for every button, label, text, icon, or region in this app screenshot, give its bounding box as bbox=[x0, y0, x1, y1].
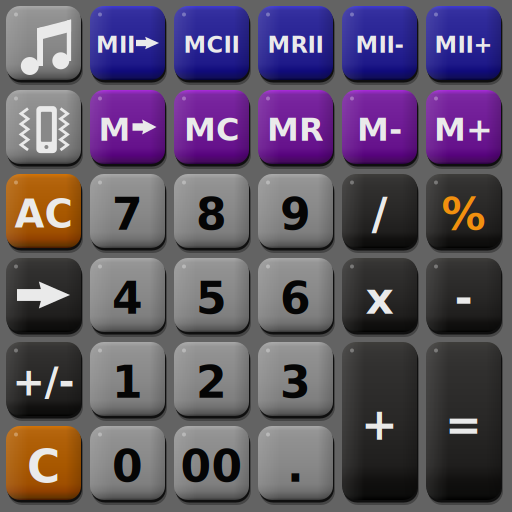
button[interactable]: Clear memory two bbox=[174, 6, 249, 80]
staticText: 4 bbox=[112, 273, 143, 324]
staticText: / bbox=[371, 189, 387, 240]
button[interactable]: Divide bbox=[342, 174, 417, 248]
button[interactable]: Minus bbox=[426, 258, 501, 332]
button[interactable]: Clear bbox=[6, 426, 81, 500]
staticText: M+ bbox=[434, 111, 493, 148]
staticText: MII bbox=[96, 32, 135, 58]
button[interactable]: 8 bbox=[174, 174, 249, 248]
staticText: 5 bbox=[196, 273, 227, 324]
button[interactable]: Store to memory bbox=[90, 90, 165, 164]
staticText: MRII bbox=[267, 32, 323, 58]
staticText: 9 bbox=[280, 189, 311, 240]
button[interactable]: All clear bbox=[6, 174, 81, 248]
button[interactable]: Memory minus bbox=[342, 90, 417, 164]
button[interactable]: Plus bbox=[342, 342, 417, 500]
staticText: AC bbox=[14, 192, 72, 237]
staticText: 7 bbox=[112, 189, 143, 240]
button[interactable]: Vibrate bbox=[6, 90, 81, 164]
staticText: + bbox=[361, 399, 398, 450]
button[interactable]: 9 bbox=[258, 174, 333, 248]
staticText: 00 bbox=[180, 441, 242, 492]
staticText: MC bbox=[184, 111, 239, 148]
staticText: MCII bbox=[183, 32, 239, 58]
button[interactable]: 00 bbox=[174, 426, 249, 500]
button[interactable]: Sound bbox=[6, 6, 81, 80]
button[interactable]: Plus or minus bbox=[6, 342, 81, 416]
staticText: 8 bbox=[196, 189, 227, 240]
button[interactable]: Memory plus bbox=[426, 90, 501, 164]
button[interactable]: 3 bbox=[258, 342, 333, 416]
staticText: MII+ bbox=[434, 32, 492, 58]
button[interactable]: 6 bbox=[258, 258, 333, 332]
staticText: . bbox=[287, 441, 304, 492]
button[interactable]: 4 bbox=[90, 258, 165, 332]
button[interactable]: Decimal point bbox=[258, 426, 333, 500]
staticText: 0 bbox=[112, 441, 143, 492]
staticText: MR bbox=[267, 111, 324, 148]
button[interactable]: 7 bbox=[90, 174, 165, 248]
button[interactable]: 1 bbox=[90, 342, 165, 416]
button[interactable]: Memory two minus bbox=[342, 6, 417, 80]
staticText: 2 bbox=[196, 357, 227, 408]
staticText: x bbox=[365, 273, 393, 324]
staticText: 1 bbox=[112, 357, 143, 408]
button[interactable]: Memory clear bbox=[174, 90, 249, 164]
staticText: - bbox=[454, 273, 472, 324]
staticText: % bbox=[441, 189, 485, 240]
button[interactable]: 0 bbox=[90, 426, 165, 500]
button[interactable]: Memory two plus bbox=[426, 6, 501, 80]
button[interactable]: Equals bbox=[426, 342, 501, 500]
staticText: C bbox=[27, 440, 60, 493]
button[interactable]: Backspace bbox=[6, 258, 81, 332]
staticText: +/- bbox=[12, 360, 74, 405]
staticText: = bbox=[445, 399, 482, 450]
staticText: 3 bbox=[280, 357, 311, 408]
staticText: 6 bbox=[280, 273, 311, 324]
button[interactable]: Memory recall bbox=[258, 90, 333, 164]
button[interactable]: Store to memory two bbox=[90, 6, 165, 80]
button[interactable]: Percent bbox=[426, 174, 501, 248]
staticText: M- bbox=[357, 111, 402, 148]
staticText: M bbox=[98, 111, 130, 148]
button[interactable]: Multiply bbox=[342, 258, 417, 332]
staticText: MII- bbox=[355, 32, 403, 58]
button[interactable]: 5 bbox=[174, 258, 249, 332]
button[interactable]: 2 bbox=[174, 342, 249, 416]
button[interactable]: Recall memory two bbox=[258, 6, 333, 80]
